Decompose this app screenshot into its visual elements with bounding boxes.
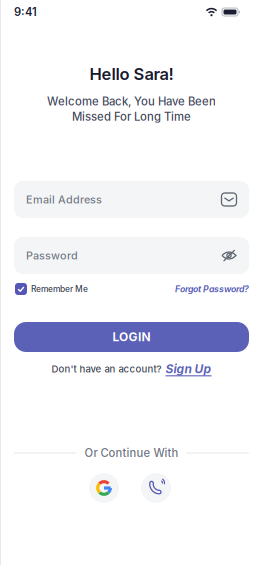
button[interactable]: Password xyxy=(14,237,249,274)
button[interactable]: Email Address xyxy=(14,181,249,218)
staticText: Sign Up xyxy=(165,362,211,376)
button[interactable]: LOGIN xyxy=(14,322,249,352)
button[interactable]: Forgot Password? xyxy=(175,284,249,294)
button[interactable]: Sign Up xyxy=(165,362,211,376)
button[interactable]: Remember Me xyxy=(15,283,88,295)
staticText: LOGIN xyxy=(112,330,150,344)
staticText: Forgot Password? xyxy=(175,284,249,294)
staticText: 9:41 xyxy=(14,5,37,19)
staticText: Missed For Long Time xyxy=(72,110,191,123)
staticText: Remember Me xyxy=(31,284,88,294)
staticText: Welcome Back, You Have Been xyxy=(47,95,216,108)
staticText: Hello Sara! xyxy=(89,64,173,84)
staticText: Don't have an account? xyxy=(51,363,161,375)
staticText: Or Continue With xyxy=(84,446,178,460)
staticText: Password xyxy=(26,249,78,262)
button[interactable]: Sign in with Google xyxy=(89,473,119,503)
button[interactable]: Sign in with Phone xyxy=(141,473,171,503)
staticText: Email Address xyxy=(26,193,102,206)
